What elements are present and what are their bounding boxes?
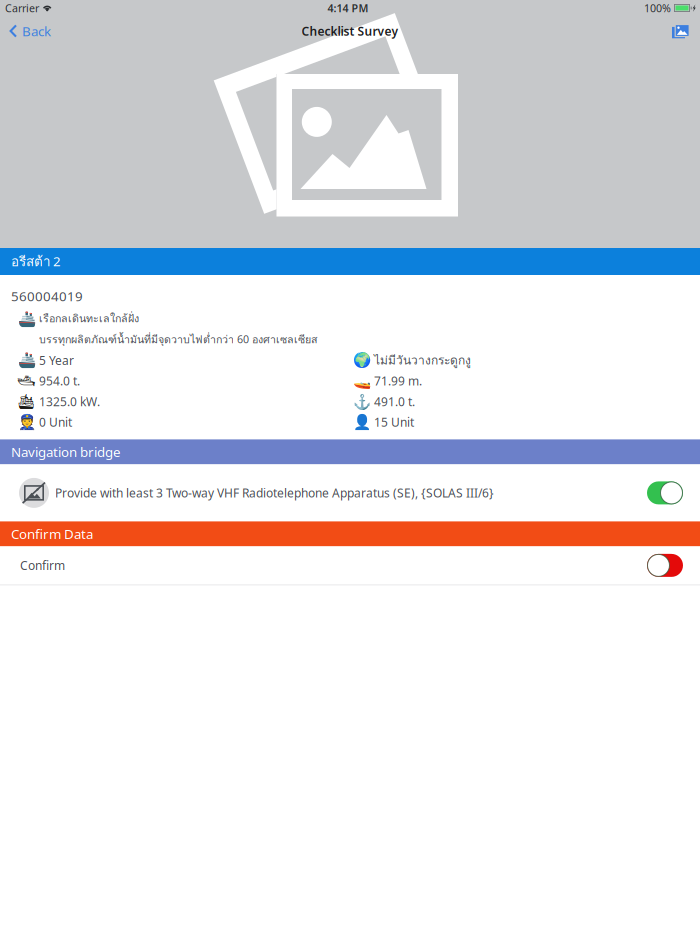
staticText: 5 Year <box>39 352 74 368</box>
staticText: Back <box>22 22 51 40</box>
staticText: 491.0 t. <box>374 393 415 409</box>
staticText: Confirm Data <box>11 525 93 543</box>
staticText: อรีสต้า 2 <box>11 251 61 272</box>
staticText: 15 Unit <box>374 414 414 430</box>
staticText: 👤 <box>352 414 370 430</box>
staticText: Confirm <box>20 557 65 573</box>
button[interactable]: Confirm <box>0 546 700 584</box>
staticText: เรือกลเดินทะเลใกล้ฝั่ง <box>39 310 139 327</box>
button[interactable]: Provide with least 3 Two-way VHF Radiote… <box>0 464 700 521</box>
staticText: 🚤 <box>352 372 370 389</box>
staticText: 🛳 <box>17 393 36 410</box>
staticText: 954.0 t. <box>39 373 80 389</box>
staticText: 100% <box>644 1 671 15</box>
staticText: ไม่มีวันวางกระดูกงู <box>374 351 471 370</box>
staticText: บรรทุกผลิตภัณฑ์น้ำมันที่มีจุดวาบไฟต่ำกว่… <box>39 331 318 348</box>
staticText: 4:14 PM <box>327 1 368 15</box>
staticText: 👮 <box>17 414 35 430</box>
staticText: 🚢 <box>17 310 35 327</box>
staticText: 0 Unit <box>39 414 72 430</box>
staticText: 🚢 <box>17 352 35 369</box>
button[interactable]: Back <box>0 17 59 45</box>
staticText: 🛥 <box>17 372 36 389</box>
button[interactable]: Photos <box>662 17 700 45</box>
staticText: 1325.0 kW. <box>39 393 100 409</box>
staticText: 71.99 m. <box>374 373 422 389</box>
staticText: ⚓ <box>352 393 370 410</box>
staticText: Checklist Survey <box>301 23 398 39</box>
staticText: Provide with least 3 Two-way VHF Radiote… <box>55 485 494 501</box>
staticText: Navigation bridge <box>11 443 121 461</box>
staticText: 560004019 <box>11 287 83 305</box>
staticText: Carrier <box>5 1 39 15</box>
staticText: 🌍 <box>352 352 370 369</box>
